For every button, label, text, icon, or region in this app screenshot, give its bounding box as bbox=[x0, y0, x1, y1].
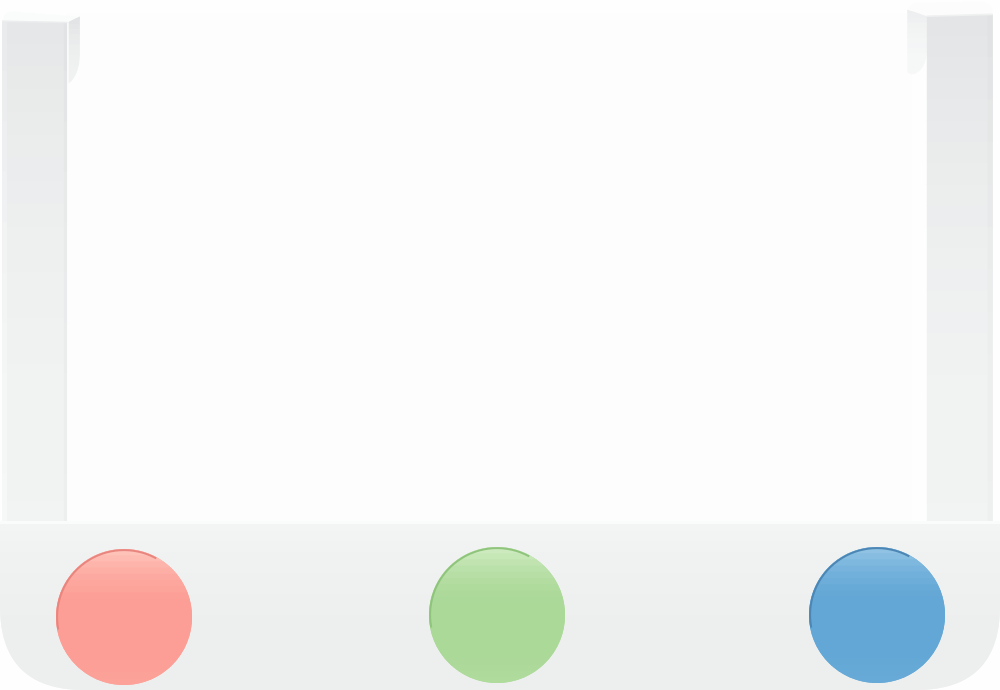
button[interactable]: Blue hook bbox=[809, 547, 945, 683]
button[interactable]: Pink hook bbox=[56, 549, 192, 685]
button[interactable]: Green hook bbox=[429, 547, 565, 683]
